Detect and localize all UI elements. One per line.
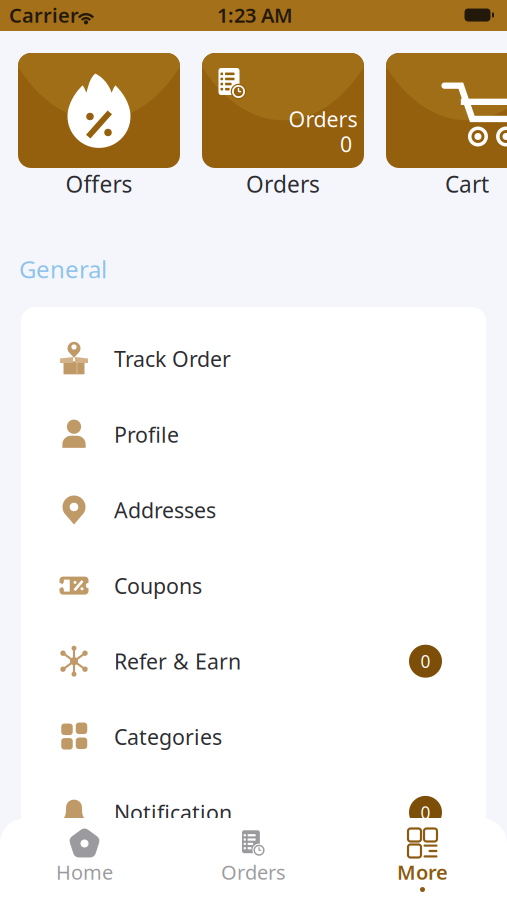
- staticText: General: [19, 253, 107, 285]
- staticText: Categories: [114, 723, 222, 751]
- staticText: 1:23 AM: [217, 2, 293, 28]
- button[interactable]: Track Order: [21, 321, 486, 397]
- staticText: Offers: [65, 169, 132, 199]
- button[interactable]: More: [338, 818, 507, 900]
- button[interactable]: Orders: [202, 53, 364, 168]
- button[interactable]: Coupons: [21, 548, 486, 623]
- staticText: Coupons: [114, 571, 202, 600]
- staticText: Refer & Earn: [114, 647, 241, 675]
- button[interactable]: Cart: [386, 53, 507, 168]
- staticText: Addresses: [114, 496, 216, 524]
- button[interactable]: Addresses: [21, 472, 486, 548]
- button[interactable]: Categories: [21, 699, 486, 775]
- staticText: Home: [56, 859, 113, 885]
- button[interactable]: Refer & Earn: [21, 623, 486, 699]
- staticText: 0: [340, 130, 352, 158]
- button[interactable]: Home: [0, 818, 169, 900]
- button[interactable]: Offers: [18, 53, 180, 168]
- button[interactable]: Notification: [21, 775, 486, 850]
- staticText: 0: [420, 650, 430, 673]
- button[interactable]: Profile: [21, 397, 486, 472]
- staticText: Cart: [445, 169, 489, 199]
- staticText: Profile: [114, 420, 179, 448]
- staticText: Orders: [246, 169, 320, 199]
- staticText: Notification: [114, 798, 232, 826]
- staticText: Track Order: [114, 345, 231, 373]
- staticText: 0: [420, 801, 430, 824]
- button[interactable]: Orders: [169, 818, 338, 900]
- staticText: Orders: [221, 859, 286, 885]
- staticText: Carrier: [9, 2, 79, 28]
- staticText: More: [397, 859, 448, 885]
- staticText: Orders: [288, 105, 357, 133]
